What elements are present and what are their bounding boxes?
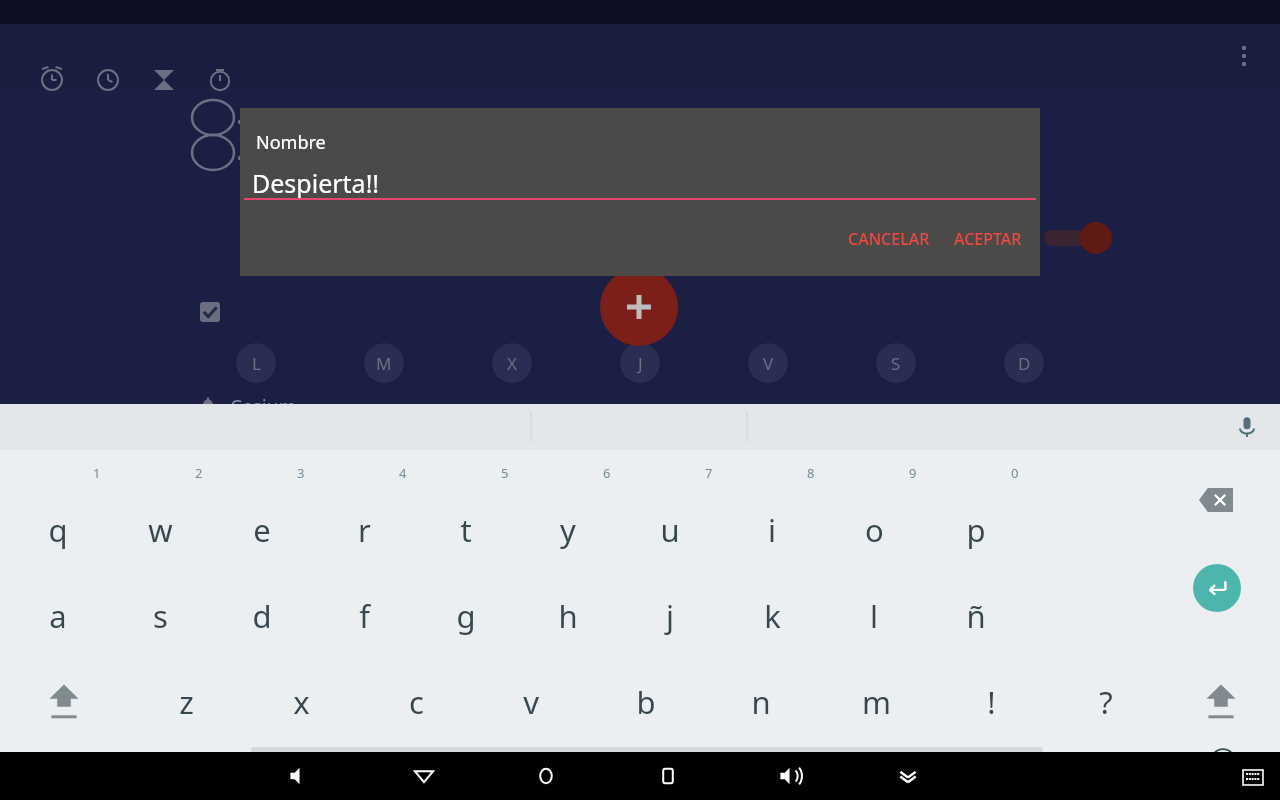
staticText: c	[409, 681, 424, 723]
staticText: D	[1018, 352, 1031, 375]
button[interactable]: Volume up	[768, 754, 812, 798]
staticText: i	[768, 509, 776, 551]
button[interactable]: y	[528, 500, 608, 560]
button[interactable]: c	[376, 672, 456, 732]
button[interactable]: Clock	[86, 58, 130, 102]
staticText: w	[148, 509, 173, 551]
button[interactable]: Stopwatch	[198, 58, 242, 102]
button[interactable]: w	[120, 500, 200, 560]
staticText: 7	[705, 464, 713, 482]
button[interactable]: h	[528, 586, 608, 646]
button[interactable]: L	[236, 343, 276, 383]
button[interactable]: Alarm	[30, 58, 74, 102]
staticText: L	[252, 352, 261, 375]
button[interactable]: i	[732, 500, 812, 560]
button[interactable]: x	[261, 672, 341, 732]
staticText: 0	[1011, 464, 1019, 482]
button[interactable]: Timer	[142, 58, 186, 102]
staticText: j	[666, 595, 674, 637]
button[interactable]: ACEPTAR	[942, 220, 1034, 258]
button[interactable]: Emoji	[1198, 736, 1248, 786]
button[interactable]: k	[732, 586, 812, 646]
staticText: v	[523, 681, 539, 723]
button[interactable]: z	[146, 672, 226, 732]
button[interactable]: Hide keyboard	[886, 754, 930, 798]
staticText: 1	[93, 464, 101, 482]
button[interactable]: Shift	[1181, 672, 1261, 732]
staticText: q	[48, 509, 68, 551]
staticText: f	[359, 595, 370, 637]
staticText: V	[763, 352, 774, 375]
staticText: x	[293, 681, 310, 723]
staticText: Despierta!!	[252, 166, 380, 200]
staticText: t	[460, 509, 472, 551]
staticText: g	[456, 595, 476, 637]
button[interactable]: ñ	[936, 586, 1016, 646]
button[interactable]: v	[491, 672, 571, 732]
button[interactable]: J	[620, 343, 660, 383]
button[interactable]: Home	[524, 754, 568, 798]
button[interactable]: M	[364, 343, 404, 383]
button[interactable]: u	[630, 500, 710, 560]
button[interactable]: Volume down	[278, 754, 322, 798]
button[interactable]: d	[222, 586, 302, 646]
button[interactable]: g	[426, 586, 506, 646]
button[interactable]: a	[18, 586, 98, 646]
button[interactable]: Keyboard	[1240, 764, 1266, 790]
button[interactable]: S	[876, 343, 916, 383]
button[interactable]: Shift	[24, 672, 104, 732]
staticText: a	[49, 595, 67, 637]
button[interactable]: Backspace	[1186, 474, 1246, 526]
button[interactable]: Back	[402, 754, 446, 798]
button[interactable]: Add alarm	[600, 268, 678, 346]
button[interactable]: p	[936, 500, 1016, 560]
button[interactable]: t	[426, 500, 506, 560]
button[interactable]: ?123	[26, 738, 104, 790]
button[interactable]: e	[222, 500, 302, 560]
button[interactable]: X	[492, 343, 532, 383]
staticText: s	[153, 595, 168, 637]
staticText: b	[636, 681, 656, 723]
button[interactable]: More options	[1224, 36, 1264, 76]
staticText: o	[865, 509, 884, 551]
button[interactable]: !	[951, 672, 1031, 732]
button[interactable]: n	[721, 672, 801, 732]
button[interactable]: Recents	[646, 754, 690, 798]
staticText: !	[987, 681, 996, 723]
staticText: ?123	[42, 750, 88, 779]
staticText: Cesium	[230, 394, 297, 420]
button[interactable]: Voice input	[1230, 410, 1264, 444]
button[interactable]: ?	[1066, 672, 1146, 732]
staticText: l	[870, 595, 878, 637]
button[interactable]: CANCELAR	[836, 220, 942, 258]
button[interactable]: Enter	[1193, 564, 1241, 612]
button[interactable]: b	[606, 672, 686, 732]
button[interactable]: l	[834, 586, 914, 646]
staticText: k	[764, 595, 781, 637]
button[interactable]: m	[836, 672, 916, 732]
button[interactable]: q	[18, 500, 98, 560]
staticText: Nombre	[256, 130, 326, 155]
button[interactable]: D	[1004, 343, 1044, 383]
staticText: 9	[909, 464, 917, 482]
button[interactable]: j	[630, 586, 710, 646]
button[interactable]: r	[324, 500, 404, 560]
staticText: 8	[807, 464, 815, 482]
button[interactable]: o	[834, 500, 914, 560]
staticText: y	[560, 509, 576, 551]
button[interactable]: s	[120, 586, 200, 646]
staticText: r	[358, 509, 371, 551]
staticText: h	[558, 595, 578, 637]
button[interactable]: f	[324, 586, 404, 646]
staticText: 4	[399, 464, 407, 482]
staticText: z	[179, 681, 194, 723]
button[interactable]	[196, 298, 224, 326]
button[interactable]: V	[748, 343, 788, 383]
button[interactable]: Space	[251, 747, 1043, 773]
button[interactable]: Cesium	[196, 394, 297, 420]
button[interactable]: Alarm enabled	[1030, 214, 1100, 262]
staticText: e	[253, 509, 271, 551]
